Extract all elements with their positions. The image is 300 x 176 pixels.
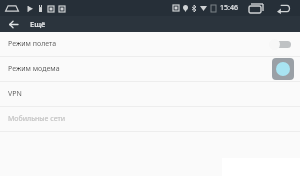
button[interactable]: Recents bbox=[249, 4, 263, 13]
staticText: VPN bbox=[8, 89, 22, 99]
button[interactable]: VPN bbox=[0, 82, 300, 106]
button[interactable]: Мобильные сети bbox=[0, 107, 300, 131]
button[interactable]: Back bbox=[277, 4, 290, 13]
button[interactable]: Airplane mode toggle bbox=[268, 37, 294, 51]
staticText: Ещё bbox=[30, 19, 46, 29]
button[interactable]: Tethering toggle bbox=[272, 58, 294, 80]
button[interactable]: Режим модема bbox=[0, 57, 300, 81]
button[interactable]: Режим полета bbox=[0, 32, 300, 56]
button[interactable]: Back bbox=[6, 17, 20, 31]
staticText: Режим полета bbox=[8, 39, 57, 49]
staticText: Мобильные сети bbox=[8, 114, 66, 124]
staticText: 15:46 bbox=[220, 3, 238, 13]
staticText: Режим модема bbox=[8, 64, 60, 74]
